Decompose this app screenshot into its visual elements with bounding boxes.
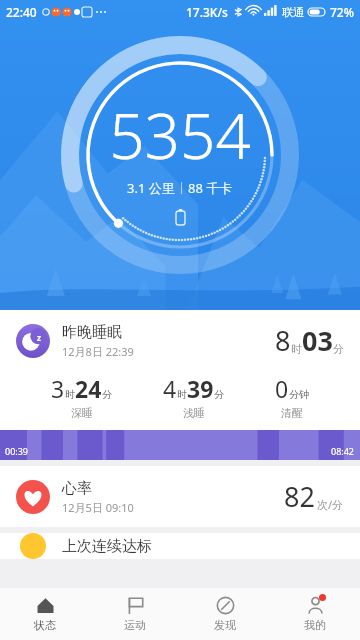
staticText: 82 <box>284 478 315 515</box>
staticText: 4 <box>163 373 177 404</box>
staticText: 次/分 <box>317 497 344 512</box>
staticText: 39 <box>187 373 214 404</box>
staticText: 12月8日 22:39 <box>62 344 134 359</box>
staticText: 分 <box>214 388 224 401</box>
staticText: 17.3K/s <box>186 4 228 20</box>
staticText: 清醒 <box>281 406 303 420</box>
staticText: 22:40 <box>6 4 37 20</box>
staticText: 深睡 <box>71 406 93 420</box>
button[interactable]: 心率 <box>0 466 360 527</box>
staticText: 3.1 公里 <box>127 179 175 197</box>
staticText: 分钟 <box>289 388 309 401</box>
staticText: 状态 <box>34 618 56 632</box>
staticText: z <box>37 332 41 343</box>
staticText: 03 <box>302 322 333 359</box>
button[interactable]: z <box>0 310 360 460</box>
staticText: 时 <box>291 342 302 356</box>
staticText: 5354 <box>109 93 251 177</box>
staticText: 分 <box>102 388 112 401</box>
staticText: 我的 <box>304 618 326 632</box>
staticText: 联通 <box>282 5 304 19</box>
staticText: 心率 <box>62 479 92 498</box>
staticText: 08:42 <box>331 445 355 457</box>
staticText: 72% <box>330 4 354 20</box>
other: Bluetooth <box>233 6 243 18</box>
staticText: 浅睡 <box>183 406 205 420</box>
button[interactable]: 运动 <box>90 588 180 640</box>
staticText: 24 <box>75 373 102 404</box>
staticText: 8 <box>275 322 291 359</box>
staticText: 时 <box>177 388 187 401</box>
staticText: 昨晚睡眠 <box>62 323 122 342</box>
staticText: 分 <box>333 342 344 356</box>
staticText: 88 千卡 <box>188 179 233 197</box>
staticText: 发现 <box>214 618 236 632</box>
staticText: 运动 <box>124 618 146 632</box>
staticText: 3 <box>51 373 65 404</box>
button[interactable]: 状态 <box>0 588 90 640</box>
other: Wi-Fi <box>247 6 260 18</box>
staticText: 00:39 <box>5 445 29 457</box>
staticText: 0 <box>275 373 289 404</box>
staticText: 上次连续达标 <box>62 537 152 556</box>
staticText: 12月5日 09:10 <box>62 500 134 515</box>
staticText: 时 <box>65 388 75 401</box>
button[interactable]: 上次连续达标 <box>0 533 360 559</box>
button[interactable]: 我的 <box>270 588 360 640</box>
button[interactable]: 发现 <box>180 588 270 640</box>
